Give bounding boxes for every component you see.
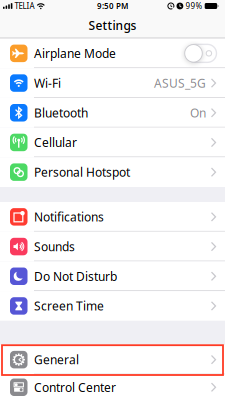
- button[interactable]: Sounds: [0, 232, 225, 261]
- button[interactable]: Wi-Fi: [0, 68, 225, 98]
- staticText: ASUS_5G: [154, 75, 206, 91]
- staticText: 9:50 PM: [97, 1, 128, 11]
- button[interactable]: Personal Hotspot: [0, 157, 225, 187]
- staticText: On: [190, 105, 206, 121]
- staticText: 99%: [185, 1, 202, 11]
- button[interactable]: Do Not Disturb: [0, 261, 225, 291]
- button[interactable]: Bluetooth: [0, 98, 225, 128]
- button[interactable]: General: [0, 345, 225, 374]
- staticText: Personal Hotspot: [34, 164, 130, 180]
- staticText: Airplane Mode: [34, 45, 116, 61]
- staticText: Do Not Disturb: [34, 268, 117, 284]
- button[interactable]: Notifications: [0, 202, 225, 232]
- button[interactable]: Airplane Mode: [186, 44, 216, 62]
- button[interactable]: Control Center: [0, 374, 225, 400]
- staticText: Cellular: [34, 134, 77, 150]
- staticText: Screen Time: [34, 298, 104, 314]
- staticText: Control Center: [34, 379, 116, 395]
- staticText: General: [34, 352, 79, 368]
- button[interactable]: Cellular: [0, 128, 225, 157]
- staticText: Sounds: [34, 239, 75, 254]
- staticText: TELIA: [15, 1, 35, 11]
- staticText: Bluetooth: [34, 105, 88, 121]
- button[interactable]: Screen Time: [0, 291, 225, 321]
- staticText: Notifications: [34, 209, 104, 225]
- staticText: Wi-Fi: [34, 75, 61, 91]
- button[interactable]: Airplane Mode: [0, 38, 225, 68]
- staticText: Settings: [88, 17, 136, 33]
